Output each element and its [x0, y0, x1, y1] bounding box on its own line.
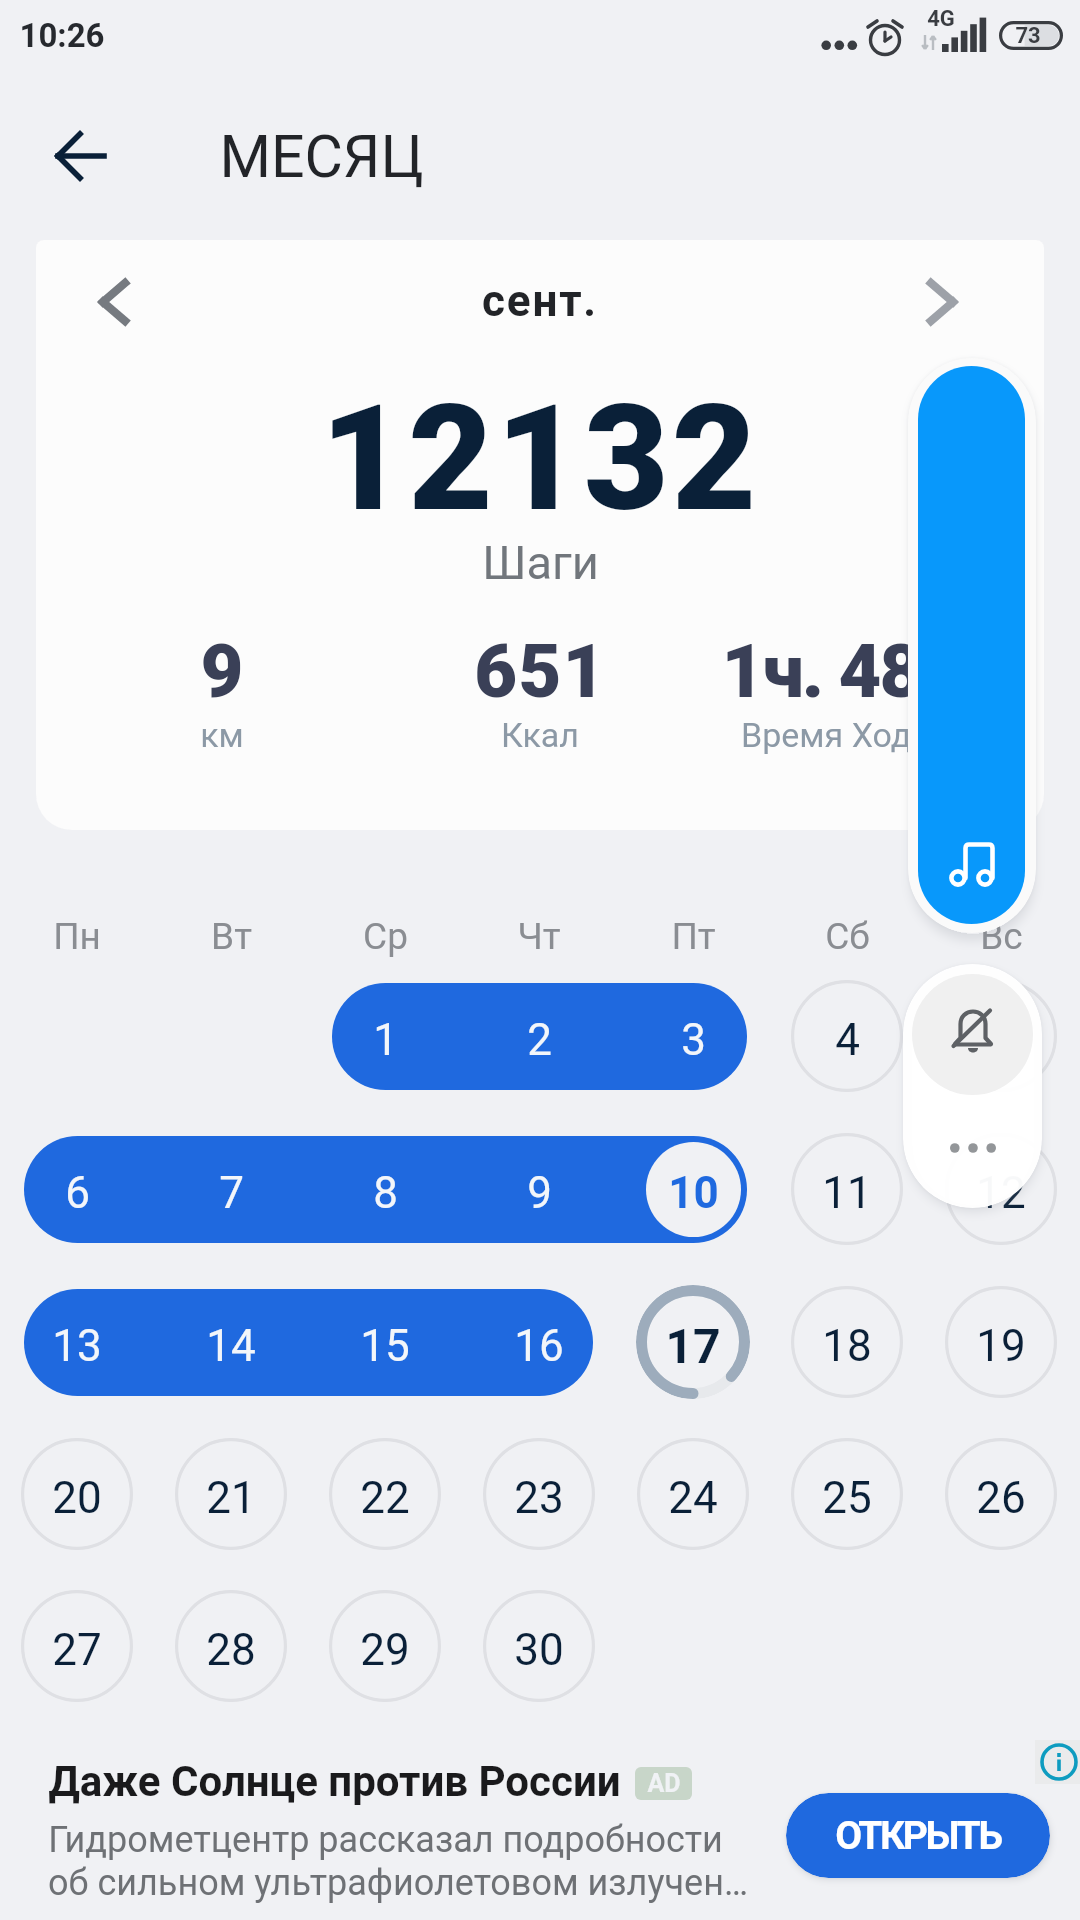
button[interactable]: 29 [328, 1589, 442, 1703]
staticText: 28 [206, 1624, 256, 1676]
button[interactable]: ОТКРЫТЬ [786, 1793, 1050, 1878]
staticText: 9 [200, 628, 245, 715]
staticText: 10 [668, 1167, 719, 1219]
staticText: Пт [671, 915, 716, 958]
button[interactable]: 16 [482, 1285, 596, 1399]
staticText: Гидрометцентр рассказал подробности [48, 1819, 723, 1861]
button[interactable]: 24 [636, 1437, 750, 1551]
button[interactable]: Ad info [1035, 1740, 1080, 1784]
button[interactable]: 14 [174, 1285, 288, 1399]
button[interactable]: 10 [636, 1132, 750, 1246]
button[interactable]: Даже Солнце против России [36, 1745, 756, 1915]
staticText: 4G [927, 6, 955, 32]
button[interactable]: 28 [174, 1589, 288, 1703]
button[interactable]: 21 [174, 1437, 288, 1551]
staticText: 11 [822, 1167, 872, 1219]
staticText: 22 [360, 1472, 410, 1524]
staticText: 14 [206, 1320, 256, 1372]
button[interactable]: 2 [482, 979, 596, 1093]
staticText: 1ч. 48м. [721, 628, 996, 715]
staticText: 12132 [320, 374, 760, 545]
button[interactable]: Silence notifications [912, 974, 1033, 1095]
staticText: 1 [373, 1014, 398, 1066]
staticText: 12 [976, 1167, 1026, 1219]
staticText: 19 [976, 1320, 1026, 1372]
staticText: 9 [527, 1167, 552, 1219]
button[interactable]: 5 [944, 979, 1058, 1093]
staticText: 27 [52, 1624, 102, 1676]
button[interactable]: 23 [482, 1437, 596, 1551]
staticText: 2 [527, 1014, 552, 1066]
staticText: 10:26 [19, 16, 105, 55]
staticText: Ккал [501, 715, 579, 755]
staticText: 73 [1015, 23, 1041, 49]
staticText: Вт [211, 915, 252, 958]
staticText: Пн [53, 915, 101, 958]
staticText: 3 [681, 1014, 706, 1066]
button[interactable]: Next month [902, 262, 982, 342]
button[interactable]: 17 [636, 1285, 750, 1399]
button[interactable]: 19 [944, 1285, 1058, 1399]
staticText: 21 [206, 1472, 256, 1524]
staticText: ОТКРЫТЬ [835, 1813, 1001, 1859]
staticText: 20 [52, 1472, 102, 1524]
staticText: 24 [668, 1472, 718, 1524]
button[interactable]: 27 [20, 1589, 134, 1703]
staticText: 25 [822, 1472, 872, 1524]
button[interactable]: 20 [20, 1437, 134, 1551]
button[interactable]: 26 [944, 1437, 1058, 1551]
staticText: 26 [976, 1472, 1026, 1524]
button[interactable]: 1 [328, 979, 442, 1093]
button[interactable]: Previous month [74, 262, 154, 342]
button[interactable]: 15 [328, 1285, 442, 1399]
staticText: AD [647, 1769, 681, 1798]
staticText: об сильном ультрафиолетовом излучен… [48, 1862, 748, 1904]
staticText: 651 [474, 628, 607, 715]
button[interactable]: Music player [918, 366, 1025, 924]
button[interactable]: 22 [328, 1437, 442, 1551]
staticText: Ср [363, 915, 408, 958]
button[interactable]: 6 [20, 1132, 134, 1246]
staticText: Время Ходьбы [741, 715, 975, 755]
staticText: 16 [514, 1320, 564, 1372]
staticText: Шаги [482, 535, 599, 590]
staticText: 4 [835, 1014, 860, 1066]
button[interactable]: More options [903, 1096, 1042, 1200]
staticText: 29 [360, 1624, 410, 1676]
button[interactable]: 25 [790, 1437, 904, 1551]
staticText: 5 [989, 1014, 1014, 1066]
button[interactable]: 9 [482, 1132, 596, 1246]
button[interactable]: 4 [790, 979, 904, 1093]
staticText: 13 [52, 1320, 102, 1372]
staticText: сент. [482, 275, 598, 327]
button[interactable]: 3 [636, 979, 750, 1093]
staticText: 23 [514, 1472, 564, 1524]
staticText: 6 [65, 1167, 90, 1219]
staticText: 15 [360, 1320, 410, 1372]
staticText: км [200, 715, 244, 755]
staticText: МЕСЯЦ [219, 122, 424, 191]
button[interactable]: Back [38, 113, 124, 199]
staticText: Вс [980, 915, 1023, 958]
staticText: Сб [825, 915, 870, 958]
staticText: Чт [517, 915, 561, 958]
button[interactable]: 13 [20, 1285, 134, 1399]
staticText: 8 [373, 1167, 398, 1219]
button[interactable]: 30 [482, 1589, 596, 1703]
staticText: Даже Солнце против России [48, 1757, 621, 1806]
staticText: 7 [219, 1167, 244, 1219]
button[interactable]: 11 [790, 1132, 904, 1246]
staticText: 30 [514, 1624, 564, 1676]
button[interactable]: 7 [174, 1132, 288, 1246]
button[interactable]: 8 [328, 1132, 442, 1246]
button[interactable]: 18 [790, 1285, 904, 1399]
button[interactable]: 12 [944, 1132, 1058, 1246]
staticText: 17 [665, 1318, 721, 1374]
staticText: 18 [822, 1320, 872, 1372]
